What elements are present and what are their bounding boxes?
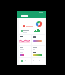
button[interactable] (19, 51, 31, 57)
button[interactable] (19, 58, 31, 64)
button[interactable] (32, 51, 45, 57)
button[interactable] (19, 18, 45, 28)
button[interactable]: App title (21, 15, 28, 17)
button[interactable] (19, 35, 31, 45)
button[interactable] (19, 28, 45, 34)
button[interactable] (19, 46, 31, 51)
button[interactable] (32, 35, 45, 45)
button[interactable] (32, 46, 45, 51)
button[interactable] (32, 58, 45, 64)
